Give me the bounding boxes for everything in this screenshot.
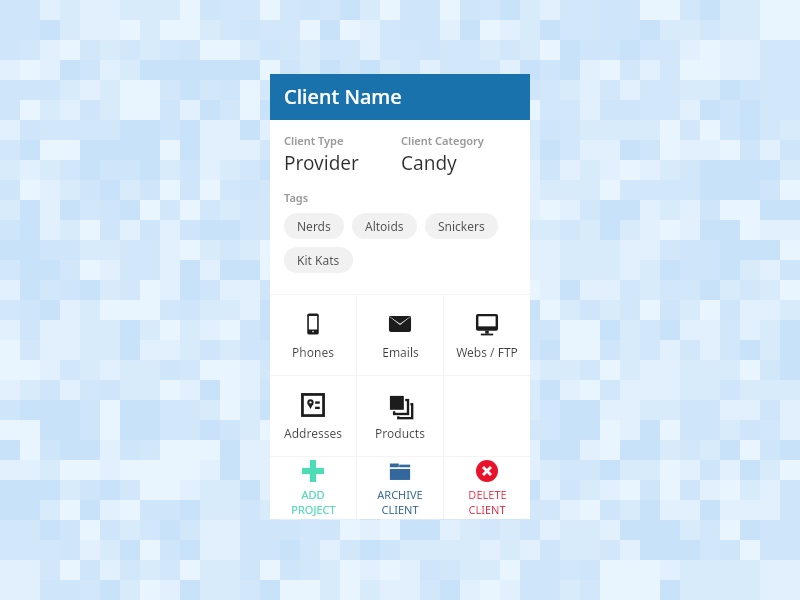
button[interactable]: Add project bbox=[270, 457, 356, 519]
staticText: Tags bbox=[284, 190, 309, 205]
button[interactable]: Webs / FTP bbox=[444, 295, 530, 375]
button[interactable]: Nerds bbox=[284, 213, 344, 239]
button[interactable]: Snickers bbox=[425, 213, 498, 239]
staticText: Emails bbox=[382, 344, 419, 360]
other: Products bbox=[388, 393, 412, 417]
staticText: Client Category bbox=[401, 133, 484, 148]
button[interactable]: Products bbox=[357, 376, 443, 456]
button[interactable]: Emails bbox=[357, 295, 443, 375]
staticText: Nerds bbox=[297, 218, 331, 234]
staticText: ARCHIVE bbox=[377, 487, 423, 502]
staticText: CLIENT bbox=[381, 502, 419, 517]
staticText: DELETE bbox=[468, 487, 507, 502]
staticText: Candy bbox=[401, 150, 457, 176]
button[interactable]: Archive client bbox=[357, 457, 443, 519]
staticText: Altoids bbox=[365, 218, 404, 234]
button[interactable]: Delete client bbox=[444, 457, 530, 519]
staticText: ADD bbox=[301, 487, 325, 502]
staticText: Snickers bbox=[438, 218, 485, 234]
staticText: Client Type bbox=[284, 133, 344, 148]
staticText: Phones bbox=[292, 344, 334, 360]
staticText: Kit Kats bbox=[297, 252, 340, 268]
other: Add project bbox=[302, 460, 324, 482]
staticText: PROJECT bbox=[291, 502, 336, 517]
staticText: Addresses bbox=[284, 425, 342, 441]
button[interactable]: Kit Kats bbox=[284, 247, 353, 273]
other: Webs / FTP bbox=[475, 312, 499, 336]
button[interactable]: Phones bbox=[270, 295, 356, 375]
button[interactable]: Client Name bbox=[270, 74, 530, 120]
button[interactable]: Altoids bbox=[352, 213, 417, 239]
other: Delete client bbox=[476, 460, 498, 482]
staticText: Products bbox=[375, 425, 425, 441]
other: Addresses bbox=[301, 393, 325, 417]
staticText: Client Name bbox=[284, 83, 402, 110]
staticText: CLIENT bbox=[468, 502, 506, 517]
staticText: Provider bbox=[284, 150, 359, 176]
button[interactable]: Addresses bbox=[270, 376, 356, 456]
staticText: Webs / FTP bbox=[456, 344, 518, 360]
other: Emails bbox=[388, 312, 412, 336]
other: Archive client bbox=[389, 460, 411, 482]
other: Phones bbox=[301, 312, 325, 336]
